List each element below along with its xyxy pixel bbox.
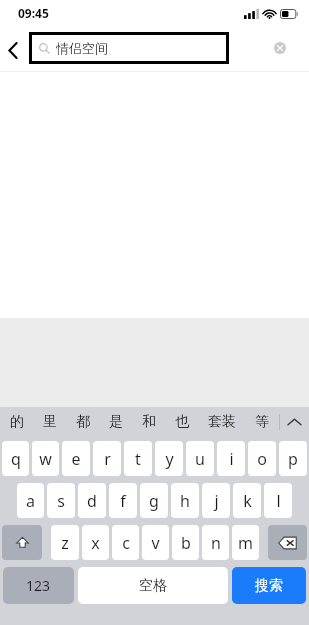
staticText: 09:45 (18, 5, 49, 21)
button[interactable]: d (78, 483, 106, 518)
button[interactable]: 123 (3, 567, 74, 604)
staticText: t (135, 448, 141, 470)
button[interactable]: Expand suggestions (280, 407, 309, 437)
button[interactable]: Backspace (268, 525, 307, 560)
button[interactable]: n (202, 525, 229, 560)
button[interactable]: u (186, 441, 214, 476)
staticText: g (149, 490, 159, 512)
staticText: i (229, 448, 234, 470)
staticText: y (165, 448, 174, 470)
button[interactable]: l (264, 483, 292, 518)
button[interactable]: p (279, 441, 307, 476)
staticText: 搜索 (255, 577, 283, 595)
staticText: u (195, 448, 205, 470)
button[interactable]: a (17, 483, 44, 518)
button[interactable]: Clear (270, 38, 290, 58)
staticText: d (87, 490, 97, 512)
staticText: e (71, 448, 81, 470)
button[interactable]: k (233, 483, 261, 518)
staticText: p (288, 448, 298, 470)
button[interactable]: q (2, 441, 29, 476)
staticText: 里 (43, 413, 57, 431)
staticText: 是 (109, 413, 123, 431)
staticText: l (276, 490, 281, 512)
button[interactable]: 和 (142, 407, 156, 437)
staticText: k (243, 490, 252, 512)
staticText: a (26, 490, 35, 512)
button[interactable]: i (217, 441, 245, 476)
staticText: c (122, 532, 130, 554)
staticText: r (104, 448, 111, 470)
button[interactable]: x (82, 525, 109, 560)
button[interactable]: y (155, 441, 183, 476)
staticText: 也 (175, 413, 189, 431)
staticText: 情侣空间 (56, 40, 108, 56)
staticText: f (120, 490, 126, 512)
button[interactable]: t (124, 441, 152, 476)
button[interactable]: Back (0, 28, 26, 72)
staticText: s (57, 490, 65, 512)
button[interactable]: z (51, 525, 79, 560)
button[interactable]: 也 (175, 407, 189, 437)
button[interactable]: m (232, 525, 259, 560)
button[interactable]: w (32, 441, 59, 476)
staticText: m (238, 532, 253, 554)
button[interactable]: Shift (2, 525, 42, 560)
staticText: o (257, 448, 267, 470)
staticText: q (11, 448, 21, 470)
staticText: 123 (26, 576, 51, 595)
button[interactable]: f (109, 483, 137, 518)
staticText: j (214, 490, 219, 512)
button[interactable]: 搜索 (232, 567, 306, 604)
button[interactable]: g (140, 483, 168, 518)
staticText: v (151, 532, 160, 554)
button[interactable]: o (248, 441, 276, 476)
button[interactable]: b (172, 525, 199, 560)
staticText: 等 (255, 413, 269, 431)
staticText: w (39, 448, 52, 470)
button[interactable]: 空格 (78, 567, 228, 604)
staticText: n (211, 532, 221, 554)
button[interactable]: 等 (255, 407, 269, 437)
button[interactable]: 都 (76, 407, 90, 437)
button[interactable]: 是 (109, 407, 123, 437)
staticText: 空格 (139, 577, 167, 595)
staticText: h (180, 490, 190, 512)
staticText: 的 (10, 413, 24, 431)
staticText: 和 (142, 413, 156, 431)
button[interactable]: j (202, 483, 230, 518)
staticText: 套装 (208, 413, 236, 431)
button[interactable]: c (112, 525, 139, 560)
button[interactable]: s (47, 483, 75, 518)
button[interactable]: h (171, 483, 199, 518)
staticText: b (181, 532, 191, 554)
button[interactable]: 情侣空间 (32, 35, 226, 61)
staticText: z (61, 532, 69, 554)
button[interactable]: 套装 (208, 407, 236, 437)
button[interactable]: r (93, 441, 121, 476)
staticText: x (91, 532, 100, 554)
button[interactable]: 里 (43, 407, 57, 437)
button[interactable]: e (62, 441, 90, 476)
staticText: 都 (76, 413, 90, 431)
button[interactable]: v (142, 525, 169, 560)
button[interactable]: 的 (10, 407, 24, 437)
